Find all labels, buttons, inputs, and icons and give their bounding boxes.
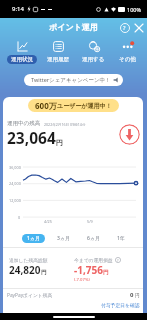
staticText: 運用状況 — [11, 56, 33, 63]
staticText: 6ヵ月 — [87, 235, 100, 242]
staticText: 円 — [103, 269, 109, 276]
staticText: 0 — [130, 291, 134, 299]
staticText: Twitterシェアキャンペーン中！ — [31, 76, 111, 84]
button[interactable]: Twitterシェアキャンペーン中！ — [24, 74, 123, 86]
staticText: 0 — [18, 215, 21, 220]
staticText: 4/25 — [44, 219, 52, 224]
staticText: 2022年2月16日 09時14分 — [44, 122, 86, 127]
button[interactable]: 1年 — [112, 234, 130, 243]
staticText: (-7.07%) — [74, 277, 90, 283]
staticText: 24,820 — [9, 263, 41, 277]
staticText: 1ヵ月 — [27, 235, 40, 242]
staticText: 運用履歴 — [47, 56, 69, 63]
staticText: PayPayポイント残高 — [7, 292, 53, 299]
staticText: ポイント運用 — [49, 22, 98, 32]
button[interactable]: 運用状況 — [6, 39, 38, 64]
staticText: ユーザーが運用中！ — [57, 102, 112, 110]
staticText: 円 — [56, 138, 63, 147]
button[interactable]: 引き出す — [119, 124, 140, 145]
staticText: ? — [117, 258, 119, 263]
staticText: 5/9 — [87, 219, 93, 224]
staticText: 9:14 — [12, 5, 24, 13]
button[interactable]: 閉じる — [133, 22, 144, 33]
staticText: 運用する — [82, 56, 105, 63]
staticText: 運用中の残高 — [7, 120, 41, 127]
staticText: 円 — [135, 293, 140, 299]
staticText: ? — [123, 24, 126, 31]
staticText: 追加した残高総額 — [9, 257, 48, 263]
staticText: -1,756 — [74, 263, 103, 277]
button[interactable]: 付与予定日を確認 — [101, 302, 140, 308]
button[interactable]: 運用する — [77, 39, 110, 64]
staticText: 600万 — [35, 100, 57, 111]
staticText: その他 — [119, 56, 136, 63]
staticText: 100% — [127, 6, 142, 13]
button[interactable]: 運用履歴 — [42, 39, 74, 64]
staticText: 36,000 — [9, 165, 21, 170]
staticText: 3ヵ月 — [57, 235, 70, 242]
staticText: 23,064 — [7, 127, 56, 148]
staticText: 円 — [41, 269, 47, 276]
staticText: 1年 — [117, 235, 125, 242]
staticText: 24,000 — [9, 181, 21, 186]
staticText: 12,000 — [9, 198, 21, 203]
button[interactable]: ヘルプ — [119, 22, 130, 33]
button[interactable]: 3ヵ月 — [52, 234, 75, 243]
button[interactable]: 1ヵ月 — [22, 234, 45, 243]
button[interactable]: 6ヵ月 — [82, 234, 105, 243]
staticText: 今までの運用損益 — [74, 257, 113, 263]
button[interactable]: その他 — [114, 39, 141, 64]
